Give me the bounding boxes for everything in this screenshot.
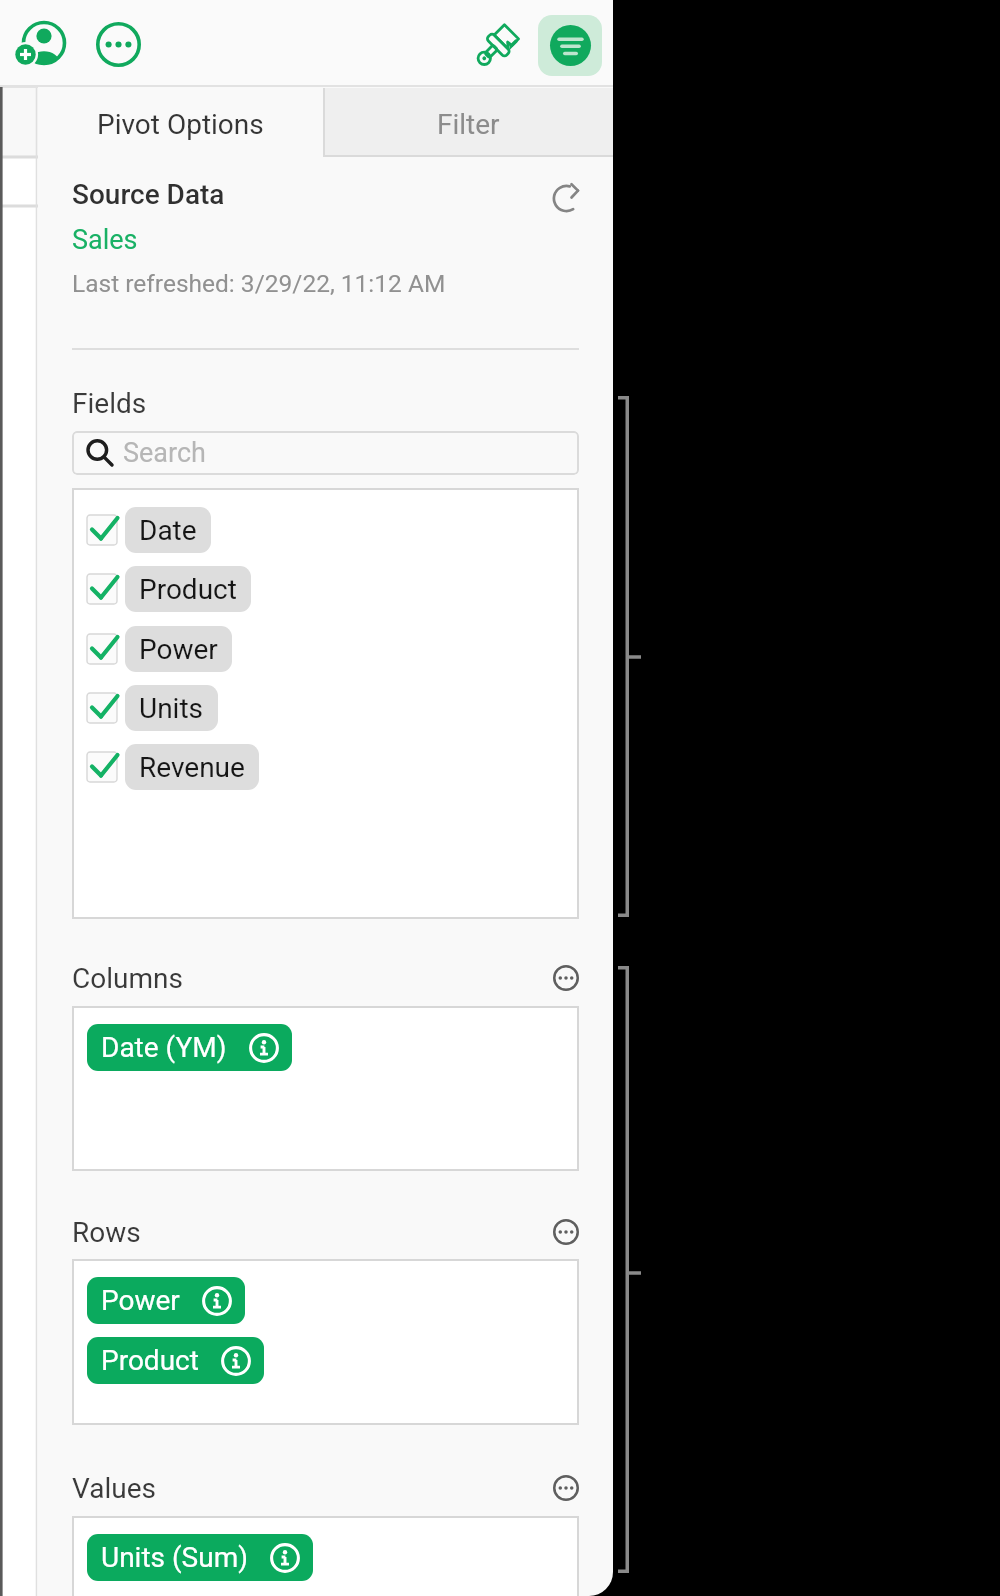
button[interactable]: Power	[87, 1277, 245, 1324]
button[interactable]: Power	[72, 1259, 579, 1425]
button[interactable]: Date (YM)	[87, 1024, 292, 1071]
button[interactable]: Units (Sum)	[87, 1534, 313, 1581]
button[interactable]: Date	[72, 503, 579, 557]
staticText: Date (YM)	[101, 1031, 227, 1064]
staticText: Revenue	[139, 751, 245, 784]
staticText: Columns	[72, 962, 183, 995]
button[interactable]: Product	[72, 562, 579, 616]
button[interactable]: Add collaborator	[7, 10, 75, 78]
staticText: Sales	[72, 224, 138, 256]
staticText: Power	[139, 633, 218, 666]
button[interactable]: Units (Sum)	[72, 1516, 579, 1596]
staticText: Values	[72, 1472, 156, 1505]
staticText: Power	[101, 1284, 180, 1317]
button[interactable]: More options	[84, 10, 152, 78]
button[interactable]: Format	[463, 13, 531, 81]
button[interactable]: Product	[87, 1337, 264, 1384]
staticText: Filter	[437, 108, 500, 141]
staticText: Fields	[72, 387, 147, 420]
button[interactable]: Rows options	[550, 1216, 582, 1248]
button[interactable]: Units	[72, 681, 579, 735]
button[interactable]: Organize	[538, 15, 602, 76]
button[interactable]: Date (YM)	[72, 1006, 579, 1171]
staticText: Units (Sum)	[101, 1541, 248, 1574]
button[interactable]: Pivot Options	[38, 88, 323, 157]
staticText: Search	[123, 437, 206, 469]
button[interactable]: Search	[72, 431, 579, 475]
button[interactable]: Refresh source data	[545, 174, 589, 218]
staticText: Source Data	[72, 178, 225, 211]
button[interactable]: Power	[72, 622, 579, 676]
staticText: Product	[101, 1344, 199, 1377]
button[interactable]: Filter	[323, 88, 613, 157]
button[interactable]: Values options	[550, 1472, 582, 1504]
staticText: Units	[139, 692, 204, 725]
button[interactable]: Revenue	[72, 740, 579, 794]
staticText: Pivot Options	[97, 108, 264, 141]
staticText: Last refreshed: 3/29/22, 11:12 AM	[72, 269, 446, 298]
staticText: Product	[139, 573, 237, 606]
button[interactable]: Columns options	[550, 962, 582, 994]
staticText: Date	[139, 514, 197, 547]
staticText: Rows	[72, 1216, 141, 1249]
